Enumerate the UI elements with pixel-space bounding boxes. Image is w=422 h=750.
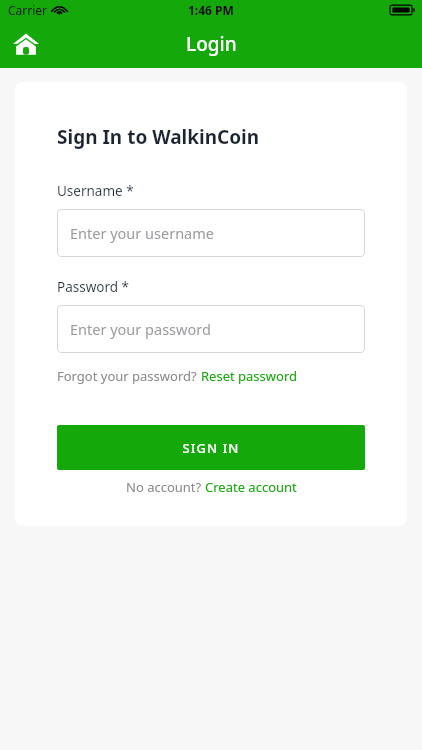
button[interactable]: Enter your password bbox=[57, 305, 365, 353]
staticText: SIGN IN bbox=[182, 439, 240, 457]
button[interactable]: Create account bbox=[205, 478, 297, 496]
staticText: Carrier bbox=[8, 2, 48, 18]
button[interactable]: Reset password bbox=[201, 367, 297, 385]
staticText: 1:46 PM bbox=[188, 2, 234, 18]
staticText: Enter your username bbox=[70, 223, 214, 243]
button[interactable]: SIGN IN bbox=[57, 425, 365, 470]
staticText: Enter your password bbox=[70, 319, 211, 339]
staticText: Sign In to WalkinCoin bbox=[57, 124, 260, 150]
staticText: Login bbox=[186, 31, 237, 57]
button[interactable]: Enter your username bbox=[57, 209, 365, 257]
staticText: Forgot your password? bbox=[57, 367, 201, 385]
staticText: Reset password bbox=[201, 367, 297, 385]
staticText: Username * bbox=[57, 182, 134, 200]
staticText: No account? bbox=[126, 478, 205, 496]
staticText: Create account bbox=[205, 478, 297, 496]
staticText: Password * bbox=[57, 278, 130, 296]
button[interactable]: Home bbox=[6, 24, 46, 64]
